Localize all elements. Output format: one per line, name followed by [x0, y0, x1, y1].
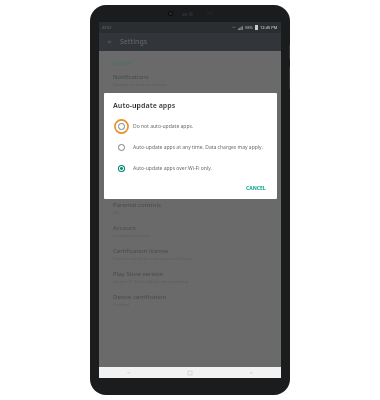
button[interactable]: Auto-update apps over Wi-Fi only.	[113, 160, 271, 176]
staticText: Receive alerts when updates are availabl…	[113, 164, 192, 169]
button[interactable]: Clear local search history	[113, 119, 271, 133]
staticText: Auto-update apps	[113, 96, 164, 104]
staticText: CANCEL	[246, 185, 266, 192]
staticText: Certification license	[113, 247, 169, 255]
button[interactable]: Device certification	[113, 293, 271, 307]
staticText: Certified	[113, 302, 130, 307]
button[interactable]: Notifications	[113, 73, 271, 87]
button[interactable]: Parental controls	[113, 201, 271, 215]
button[interactable]: Home	[159, 367, 220, 378]
staticText: Remove searches you have performed on th…	[113, 128, 212, 133]
staticText: New versions	[113, 142, 146, 149]
staticText: Version 11.9.20 build 64 with something	[113, 279, 189, 284]
staticText: 58%	[245, 25, 253, 30]
staticText: Settings	[120, 37, 148, 47]
staticText: Device certification	[113, 293, 167, 301]
staticText: AT&T	[102, 25, 112, 30]
staticText: Do not auto-update apps.	[133, 123, 271, 130]
staticText: Auto-update apps	[113, 101, 176, 111]
staticText: Auto-update apps over Wi-Fi only	[113, 105, 176, 110]
button[interactable]: Auto-update apps at any time. Data charg…	[113, 139, 271, 155]
staticText: Clear local search history	[113, 119, 184, 127]
staticText: user@example.com	[113, 233, 151, 238]
staticText: 12:45 PM	[260, 25, 278, 30]
staticText: Auto-update apps over Wi-Fi only.	[133, 165, 271, 172]
staticText: General	[113, 60, 132, 67]
button[interactable]: Auto-update apps	[113, 96, 271, 110]
button[interactable]: CANCEL	[241, 182, 271, 195]
button[interactable]: Play Store version	[113, 270, 271, 284]
button[interactable]: Back	[104, 36, 116, 48]
button[interactable]: Notify me about updates	[113, 155, 271, 169]
staticText: Off	[113, 210, 119, 215]
staticText: Auto-update apps at any time. Data charg…	[133, 144, 271, 151]
staticText: Notifications	[113, 73, 149, 81]
staticText: Account	[113, 224, 136, 232]
button[interactable]: Auto-play videos	[113, 178, 271, 192]
staticText: Parental controls	[113, 201, 161, 209]
staticText: View the details for each service certif…	[113, 256, 193, 261]
button[interactable]: Do not auto-update apps.	[113, 118, 271, 134]
staticText: Manage notification settings	[113, 82, 167, 87]
staticText: Play Store version	[113, 270, 164, 278]
button[interactable]: Certification license	[113, 247, 271, 261]
